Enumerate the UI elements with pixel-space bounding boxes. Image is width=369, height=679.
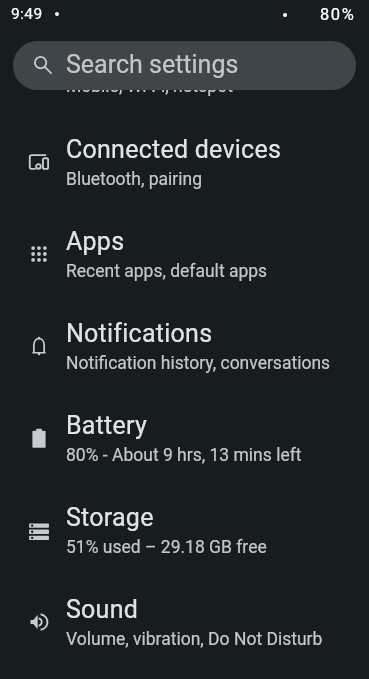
staticText: Mobile, Wi-Fi, hotspot xyxy=(66,76,233,97)
staticText: Notification history, conversations xyxy=(66,353,331,374)
staticText: Bluetooth, pairing xyxy=(66,169,203,190)
staticText: Connected devices xyxy=(66,135,282,164)
staticText: 51% used – 29.18 GB free xyxy=(66,537,267,558)
button[interactable]: Search settings xyxy=(13,41,356,90)
staticText: Search settings xyxy=(66,50,239,79)
staticText: Notifications xyxy=(66,319,213,348)
staticText: Volume, vibration, Do Not Disturb xyxy=(66,629,323,650)
staticText: Apps xyxy=(66,227,125,256)
staticText: 80% xyxy=(320,5,356,24)
button[interactable]: Battery xyxy=(0,392,369,484)
staticText: Storage xyxy=(66,503,154,532)
button[interactable]: Storage xyxy=(0,484,369,576)
staticText: Recent apps, default apps xyxy=(66,261,268,282)
staticText: 9:49 xyxy=(11,5,43,23)
staticText: Battery xyxy=(66,411,148,440)
button[interactable]: Connected devices xyxy=(0,116,369,208)
button[interactable]: Sound xyxy=(0,576,369,668)
button[interactable]: Apps xyxy=(0,208,369,300)
staticText: 80% - About 9 hrs, 13 mins left xyxy=(66,445,302,466)
button[interactable]: Notifications xyxy=(0,300,369,392)
staticText: Sound xyxy=(66,595,139,624)
